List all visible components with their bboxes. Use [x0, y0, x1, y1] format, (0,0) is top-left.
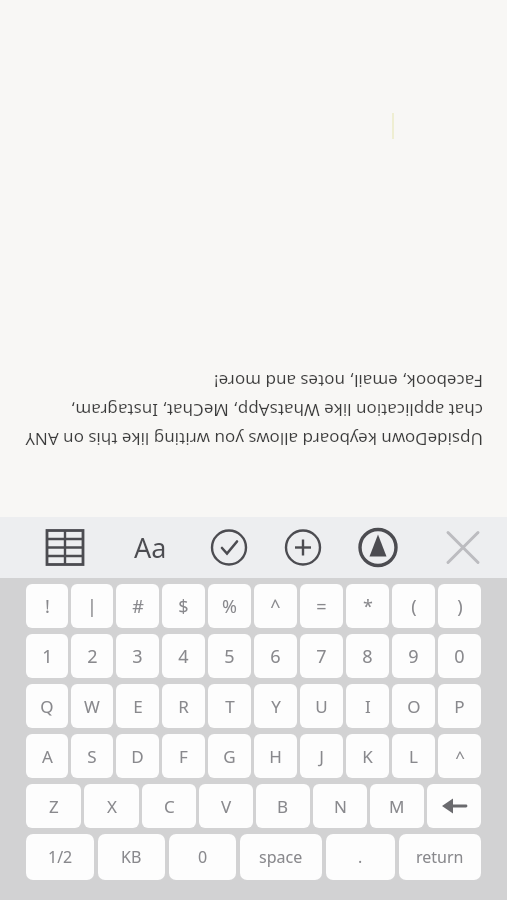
button[interactable]: W: [71, 684, 113, 728]
button[interactable]: Q: [26, 684, 68, 728]
button[interactable]: M: [370, 784, 424, 828]
staticText: KB: [121, 846, 142, 868]
button[interactable]: 8: [346, 634, 389, 678]
staticText: .: [358, 846, 363, 868]
staticText: O: [407, 695, 421, 718]
button[interactable]: Done: [210, 517, 250, 578]
button[interactable]: Add: [284, 517, 324, 578]
staticText: ^: [270, 594, 281, 619]
button[interactable]: 0: [169, 834, 236, 880]
button[interactable]: P: [438, 684, 481, 728]
button[interactable]: V: [199, 784, 253, 828]
button[interactable]: Close keyboard: [444, 517, 484, 578]
staticText: U: [315, 695, 328, 718]
staticText: #: [132, 594, 144, 619]
staticText: J: [319, 745, 324, 768]
staticText: $: [178, 594, 189, 619]
button[interactable]: H: [254, 734, 297, 778]
button[interactable]: KB: [98, 834, 165, 880]
button[interactable]: 3: [116, 634, 159, 678]
button[interactable]: N: [313, 784, 367, 828]
staticText: 1: [42, 644, 53, 669]
button[interactable]: D: [116, 734, 159, 778]
staticText: return: [416, 846, 464, 868]
staticText: 1/2: [48, 846, 73, 868]
button[interactable]: O: [392, 684, 435, 728]
staticText: 0: [198, 846, 208, 868]
staticText: X: [107, 795, 117, 818]
staticText: I: [365, 695, 371, 718]
button[interactable]: ^: [438, 734, 481, 778]
staticText: Y: [271, 695, 281, 718]
button[interactable]: ): [438, 584, 481, 628]
button[interactable]: .: [326, 834, 395, 880]
button[interactable]: 5: [208, 634, 251, 678]
button[interactable]: L: [392, 734, 435, 778]
button[interactable]: 0: [438, 634, 481, 678]
button[interactable]: Y: [254, 684, 297, 728]
button[interactable]: (: [392, 584, 435, 628]
button[interactable]: I: [346, 684, 389, 728]
staticText: ): [457, 594, 463, 619]
button[interactable]: J: [300, 734, 343, 778]
staticText: P: [454, 695, 465, 718]
staticText: Q: [40, 695, 54, 718]
button[interactable]: X: [84, 784, 139, 828]
button[interactable]: #: [116, 584, 159, 628]
staticText: =: [316, 594, 327, 619]
button[interactable]: 9: [392, 634, 435, 678]
staticText: R: [178, 695, 189, 718]
button[interactable]: S: [71, 734, 113, 778]
button[interactable]: Table: [45, 517, 85, 578]
button[interactable]: space: [240, 834, 322, 880]
button[interactable]: 7: [300, 634, 343, 678]
button[interactable]: 4: [162, 634, 205, 678]
button[interactable]: 2: [71, 634, 113, 678]
button[interactable]: U: [300, 684, 343, 728]
button[interactable]: 1/2: [26, 834, 94, 880]
staticText: L: [409, 745, 418, 768]
staticText: |: [87, 594, 97, 619]
staticText: ^: [455, 745, 465, 768]
button[interactable]: E: [116, 684, 159, 728]
button[interactable]: R: [162, 684, 205, 728]
staticText: 9: [408, 644, 419, 669]
staticText: !: [45, 594, 50, 619]
button[interactable]: $: [162, 584, 205, 628]
button[interactable]: %: [208, 584, 251, 628]
button[interactable]: Draw: [358, 517, 400, 578]
button[interactable]: 6: [254, 634, 297, 678]
staticText: E: [133, 695, 143, 718]
button[interactable]: Z: [26, 784, 81, 828]
button[interactable]: !: [26, 584, 68, 628]
button[interactable]: 1: [26, 634, 68, 678]
staticText: B: [277, 795, 289, 818]
staticText: 7: [316, 644, 327, 669]
staticText: 4: [178, 644, 189, 669]
staticText: C: [164, 795, 175, 818]
button[interactable]: =: [300, 584, 343, 628]
button[interactable]: |: [71, 584, 113, 628]
staticText: 0: [454, 644, 465, 669]
button[interactable]: A: [26, 734, 68, 778]
staticText: 2: [87, 644, 98, 669]
staticText: V: [221, 795, 232, 818]
staticText: 8: [362, 644, 373, 669]
staticText: K: [362, 745, 373, 768]
staticText: 3: [132, 644, 143, 669]
button[interactable]: C: [142, 784, 196, 828]
staticText: UpsideDown keyboard allows you writing l…: [24, 370, 483, 451]
staticText: S: [87, 745, 97, 768]
button[interactable]: return: [399, 834, 481, 880]
button[interactable]: K: [346, 734, 389, 778]
staticText: A: [42, 745, 53, 768]
button[interactable]: T: [208, 684, 251, 728]
staticText: M: [389, 795, 405, 818]
button[interactable]: Backspace: [427, 784, 481, 828]
button[interactable]: F: [162, 734, 205, 778]
button[interactable]: *: [346, 584, 389, 628]
button[interactable]: B: [256, 784, 310, 828]
button[interactable]: G: [208, 734, 251, 778]
button[interactable]: Aa: [127, 517, 173, 578]
button[interactable]: ^: [254, 584, 297, 628]
